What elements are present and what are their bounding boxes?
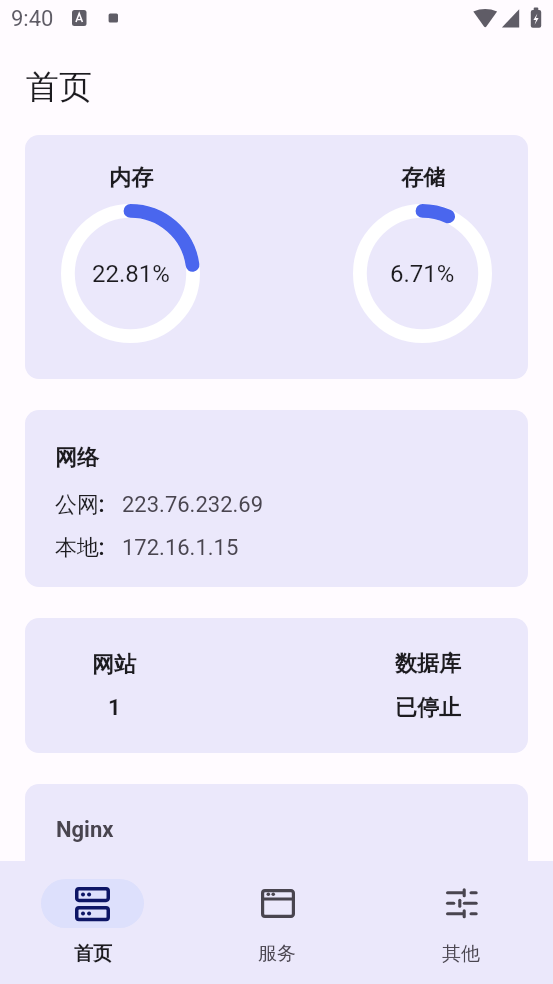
staticText: 数据库 — [395, 650, 461, 678]
other: 服务 — [261, 889, 295, 918]
staticText: 本地 — [55, 534, 99, 562]
staticText: Nginx — [56, 817, 114, 843]
staticText: 内存 — [109, 164, 153, 192]
staticText: 223.76.232.69 — [122, 492, 264, 518]
staticText: 9:40 — [11, 6, 54, 32]
staticText: 6.71% — [390, 260, 455, 288]
staticText: 网络 — [55, 444, 99, 472]
button[interactable]: 网络 — [25, 410, 528, 587]
staticText: 22.81% — [92, 260, 170, 288]
button[interactable]: 服务 — [185, 861, 369, 984]
staticText: 服务 — [258, 942, 296, 966]
staticText: 存储 — [401, 164, 445, 192]
staticText: 首页 — [26, 66, 92, 108]
staticText: 公网 — [55, 491, 99, 519]
button[interactable]: 其他 — [369, 861, 553, 984]
staticText: 首页 — [74, 942, 112, 966]
other: 其他 — [446, 888, 478, 919]
button[interactable]: Nginx — [25, 784, 528, 884]
button[interactable]: 首页 — [0, 861, 185, 984]
staticText: 172.16.1.15 — [122, 535, 239, 561]
other: 首页 — [75, 887, 110, 921]
staticText: 其他 — [442, 942, 480, 966]
staticText: 网站 — [92, 651, 136, 679]
staticText: 已停止 — [395, 694, 461, 722]
button[interactable]: 内存 — [25, 135, 528, 379]
button[interactable]: 网站 — [25, 618, 528, 753]
staticText: 1 — [108, 695, 121, 721]
